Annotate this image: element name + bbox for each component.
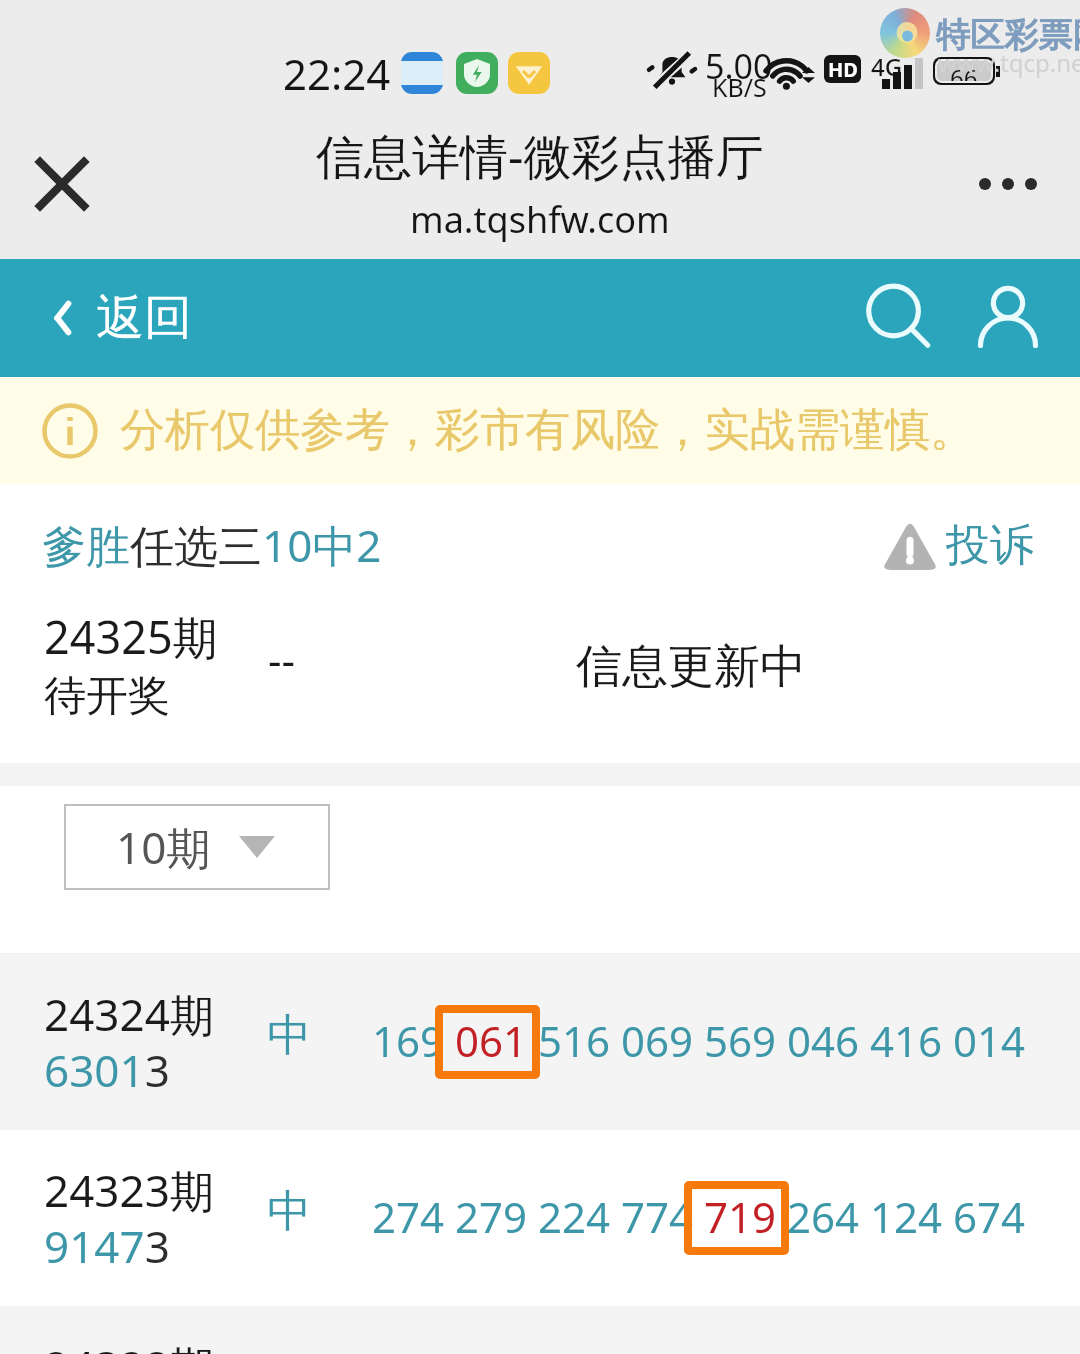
- staticText: 中: [267, 1184, 311, 1239]
- staticText: 24325期: [44, 606, 218, 667]
- staticText: --: [268, 631, 296, 688]
- button[interactable]: Account: [962, 272, 1054, 364]
- staticText: 特区彩票网: [936, 14, 1080, 57]
- button[interactable]: 返回: [30, 288, 200, 348]
- staticText: 719: [704, 1188, 777, 1245]
- staticText: 91473: [44, 1216, 170, 1276]
- button[interactable]: 10期: [64, 804, 330, 890]
- button[interactable]: Search: [850, 272, 942, 364]
- staticText: 5.00: [705, 43, 773, 89]
- staticText: 014: [953, 1012, 1026, 1069]
- staticText: 返回: [96, 288, 192, 348]
- staticText: 416: [870, 1012, 943, 1069]
- staticText: 待开奖: [44, 670, 170, 723]
- staticText: 63013: [44, 1040, 170, 1100]
- staticText: 069: [621, 1012, 694, 1069]
- staticText: 信息详情-微彩点播厅: [316, 123, 764, 189]
- staticText: 124: [870, 1188, 943, 1245]
- staticText: 22:24: [283, 45, 391, 102]
- staticText: 774: [621, 1188, 694, 1245]
- staticText: 信息更新中: [576, 638, 806, 696]
- staticText: 674: [953, 1188, 1026, 1245]
- staticText: 24324期: [44, 984, 214, 1044]
- staticText: 24322期: [44, 1336, 214, 1354]
- button[interactable]: 24323期: [0, 1130, 1080, 1306]
- staticText: 4G: [871, 50, 903, 83]
- staticText: www.tqcp.net: [938, 46, 1080, 79]
- staticText: 66: [950, 61, 978, 81]
- staticText: 046: [787, 1012, 860, 1069]
- staticText: 24323期: [44, 1160, 214, 1220]
- button[interactable]: Close: [22, 144, 102, 224]
- button[interactable]: More options: [962, 144, 1054, 224]
- staticText: KB/S: [712, 70, 767, 104]
- staticText: 224: [538, 1188, 611, 1245]
- staticText: HD: [828, 56, 858, 83]
- staticText: 169: [372, 1012, 445, 1069]
- button[interactable]: 投诉: [878, 518, 1038, 573]
- staticText: 爹胜任选三10中2: [42, 515, 382, 575]
- button[interactable]: 24322期: [0, 1306, 1080, 1354]
- staticText: 分析仅供参考，彩市有风险，实战需谨慎。: [120, 402, 975, 459]
- button[interactable]: 24324期: [0, 954, 1080, 1130]
- staticText: 中: [267, 1008, 311, 1063]
- staticText: 274: [372, 1188, 445, 1245]
- staticText: 264: [787, 1188, 860, 1245]
- staticText: 10期: [116, 817, 211, 877]
- staticText: 516: [538, 1012, 611, 1069]
- staticText: ma.tqshfw.com: [410, 195, 670, 244]
- staticText: 投诉: [946, 518, 1034, 573]
- staticText: 279: [455, 1188, 528, 1245]
- staticText: 569: [704, 1012, 777, 1069]
- staticText: 061: [455, 1012, 528, 1069]
